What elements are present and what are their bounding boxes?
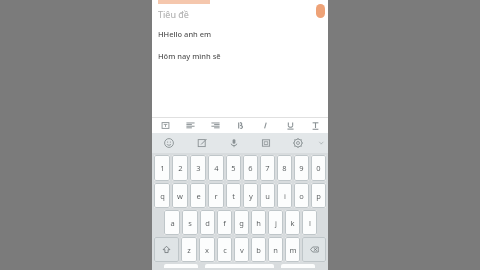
button[interactable]: o xyxy=(294,183,309,208)
button[interactable]: z xyxy=(181,237,197,262)
button[interactable]: 3 xyxy=(190,155,206,181)
button[interactable]: r xyxy=(208,183,224,208)
button[interactable]: y xyxy=(243,183,258,208)
button[interactable]: 6 xyxy=(243,155,258,181)
staticText: 4 xyxy=(214,163,219,173)
staticText: j xyxy=(275,218,277,228)
button[interactable]: Text style xyxy=(152,117,178,133)
staticText: 0 xyxy=(316,163,321,173)
staticText: f xyxy=(223,218,226,228)
staticText: 1 xyxy=(160,163,165,173)
staticText: z xyxy=(187,245,191,255)
staticText: Tiêu đề xyxy=(158,8,189,20)
button[interactable]: a xyxy=(164,210,180,235)
staticText: Hôm nay mình sẽ xyxy=(158,51,221,61)
staticText: s xyxy=(188,218,192,228)
staticText: v xyxy=(240,245,244,255)
staticText: e xyxy=(196,191,201,201)
staticText: w xyxy=(177,191,183,201)
staticText: p xyxy=(316,191,321,201)
button[interactable]: 4 xyxy=(208,155,224,181)
button[interactable]: d xyxy=(200,210,215,235)
button[interactable]: Backspace xyxy=(302,237,326,262)
button[interactable]: 1 xyxy=(154,155,170,181)
button[interactable]: Shift xyxy=(154,237,179,262)
button[interactable]: c xyxy=(217,237,232,262)
staticText: 2 xyxy=(178,163,183,173)
button[interactable]: Align left xyxy=(178,117,203,133)
staticText: h xyxy=(256,218,261,228)
staticText: k xyxy=(290,218,295,228)
staticText: l xyxy=(309,218,311,228)
staticText: 8 xyxy=(282,163,287,173)
staticText: 6 xyxy=(248,163,253,173)
button[interactable]: q xyxy=(154,183,170,208)
staticText: x xyxy=(205,245,209,255)
staticText: q xyxy=(160,191,165,201)
staticText: y xyxy=(249,191,253,201)
button[interactable]: t xyxy=(226,183,241,208)
staticText: t xyxy=(232,191,235,201)
button[interactable]: v xyxy=(234,237,249,262)
staticText: 7 xyxy=(265,163,270,173)
staticText: c xyxy=(223,245,227,255)
button[interactable]: Italic xyxy=(253,117,278,133)
button[interactable]: 2 xyxy=(172,155,188,181)
button[interactable]: n xyxy=(268,237,283,262)
button[interactable]: u xyxy=(260,183,275,208)
button[interactable]: Voice input xyxy=(218,133,250,153)
staticText: b xyxy=(256,245,261,255)
staticText: u xyxy=(265,191,270,201)
button[interactable]: m xyxy=(285,237,300,262)
button[interactable]: Keyboard settings xyxy=(282,133,314,153)
button[interactable]: More options xyxy=(314,133,328,153)
button[interactable]: Handwriting xyxy=(185,133,218,153)
staticText: m xyxy=(289,245,297,255)
button[interactable]: Clipboard xyxy=(250,133,282,153)
button[interactable]: e xyxy=(190,183,206,208)
staticText: g xyxy=(239,218,244,228)
button[interactable]: Align right xyxy=(203,117,228,133)
button[interactable]: Bold xyxy=(228,117,253,133)
button[interactable]: g xyxy=(234,210,249,235)
button[interactable]: b xyxy=(251,237,266,262)
button[interactable]: 8 xyxy=(277,155,292,181)
button[interactable]: k xyxy=(285,210,300,235)
button[interactable]: 9 xyxy=(294,155,309,181)
button[interactable]: w xyxy=(172,183,188,208)
button[interactable]: 0 xyxy=(311,155,326,181)
staticText: r xyxy=(214,191,218,201)
button[interactable]: Symbols xyxy=(164,264,198,268)
button[interactable]: i xyxy=(277,183,292,208)
button[interactable]: Underline xyxy=(278,117,303,133)
button[interactable]: 5 xyxy=(226,155,241,181)
staticText: HHello anh em xyxy=(158,29,212,39)
button[interactable]: s xyxy=(182,210,198,235)
button[interactable]: Text color xyxy=(303,117,328,133)
button[interactable]: j xyxy=(268,210,283,235)
button[interactable]: h xyxy=(251,210,266,235)
staticText: a xyxy=(170,218,175,228)
button[interactable]: Enter xyxy=(281,264,315,268)
staticText: n xyxy=(273,245,278,255)
button[interactable]: Emoji xyxy=(152,133,185,153)
staticText: 3 xyxy=(196,163,201,173)
staticText: o xyxy=(299,191,304,201)
button[interactable]: f xyxy=(217,210,232,235)
button[interactable]: x xyxy=(199,237,215,262)
button[interactable]: p xyxy=(311,183,326,208)
button[interactable]: Scroll indicator xyxy=(316,4,325,18)
button[interactable]: l xyxy=(302,210,317,235)
staticText: 9 xyxy=(299,163,304,173)
staticText: i xyxy=(284,191,286,201)
staticText: 5 xyxy=(231,163,236,173)
staticText: d xyxy=(205,218,210,228)
button[interactable]: 7 xyxy=(260,155,275,181)
